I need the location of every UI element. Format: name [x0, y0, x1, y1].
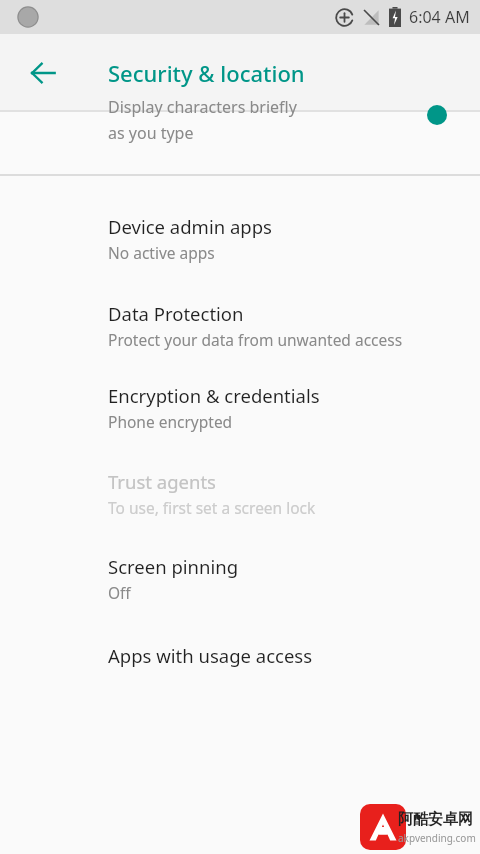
- staticText: Phone encrypted: [108, 411, 233, 432]
- staticText: Protect your data from unwanted access: [108, 329, 403, 350]
- staticText: Data Protection: [108, 301, 244, 326]
- staticText: No active apps: [108, 242, 215, 263]
- button[interactable]: Device admin apps: [0, 214, 480, 263]
- staticText: Security & location: [108, 58, 305, 88]
- staticText: Off: [108, 582, 131, 603]
- button[interactable]: Screen pinning: [0, 554, 480, 603]
- staticText: Trust agents: [108, 469, 216, 494]
- staticText: Display characters briefly: [108, 96, 297, 118]
- staticText: Device admin apps: [108, 214, 272, 239]
- staticText: To use, first set a screen lock: [108, 497, 316, 518]
- button[interactable]: Apps with usage access: [0, 643, 480, 668]
- button[interactable]: Back: [14, 44, 72, 102]
- button[interactable]: Display characters briefly: [0, 112, 480, 174]
- staticText: Encryption & credentials: [108, 383, 320, 408]
- button[interactable]: Trust agents: [0, 469, 480, 518]
- button[interactable]: Encryption & credentials: [0, 383, 480, 432]
- button[interactable]: Data Protection: [0, 301, 480, 350]
- staticText: 阿酷安卓网: [398, 810, 473, 829]
- staticText: Screen pinning: [108, 554, 239, 579]
- staticText: 6:04 AM: [409, 6, 470, 28]
- staticText: akpvending.com: [398, 831, 476, 845]
- staticText: as you type: [108, 122, 194, 144]
- staticText: Apps with usage access: [108, 643, 313, 668]
